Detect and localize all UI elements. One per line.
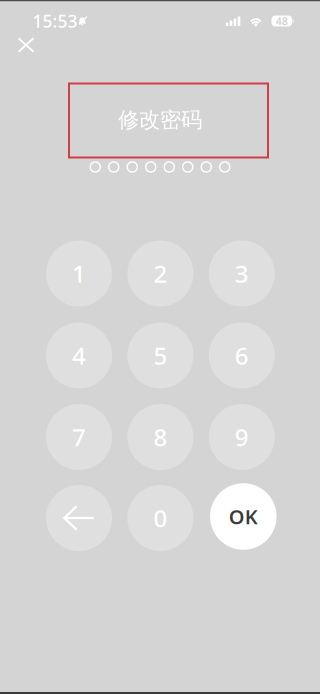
staticText: 3 xyxy=(235,258,249,289)
staticText: 48 xyxy=(276,14,288,28)
staticText: 1 xyxy=(72,258,86,289)
staticText: 2 xyxy=(153,258,167,289)
button[interactable]: 0 xyxy=(127,485,193,551)
staticText: 4 xyxy=(72,340,86,371)
staticText: 0 xyxy=(153,502,167,534)
button[interactable]: 1 xyxy=(46,240,112,306)
staticText: 5 xyxy=(153,340,167,371)
staticText: 7 xyxy=(72,421,86,453)
button[interactable]: Delete xyxy=(46,485,112,551)
button[interactable]: 8 xyxy=(127,404,193,470)
button[interactable]: OK xyxy=(210,483,277,550)
staticText: 修改密码 xyxy=(118,107,202,133)
staticText: 6 xyxy=(235,340,249,371)
button[interactable]: 5 xyxy=(127,322,193,388)
button[interactable]: 6 xyxy=(209,322,275,388)
staticText: 8 xyxy=(153,421,167,453)
staticText: OK xyxy=(229,503,258,530)
button[interactable]: 3 xyxy=(209,240,275,306)
button[interactable]: 2 xyxy=(127,240,193,306)
button[interactable]: 9 xyxy=(209,404,275,470)
staticText: 9 xyxy=(235,421,249,453)
button[interactable]: 4 xyxy=(46,322,112,388)
button[interactable]: Close xyxy=(6,26,45,64)
button[interactable]: 7 xyxy=(46,404,112,470)
staticText: 15:53 xyxy=(32,9,77,32)
